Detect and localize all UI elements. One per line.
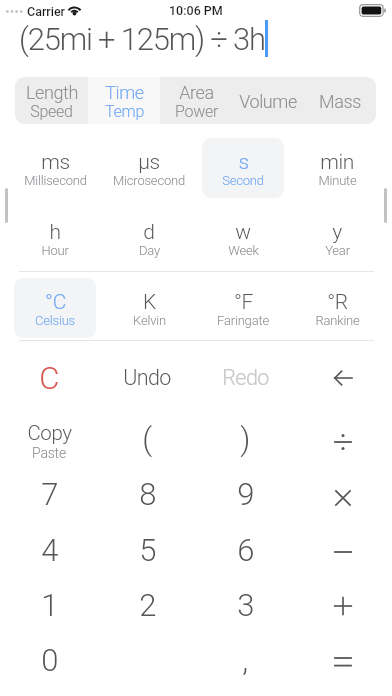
staticText: Undo [123,365,171,390]
staticText: Paste [32,445,66,461]
staticText: Mass [319,91,361,112]
button[interactable]: ( [98,411,196,467]
button[interactable]: 0 [0,632,98,687]
button[interactable]: Area [160,77,232,124]
staticText: Day [139,243,160,258]
button[interactable]: C [0,349,98,406]
staticText: 6 [237,532,254,568]
staticText: Time [105,82,144,103]
button[interactable]: h [14,208,96,268]
staticText: 4 [41,532,58,568]
staticText: Temp [105,102,144,121]
button[interactable]: Divide [294,414,392,470]
button[interactable]: w [202,208,284,268]
staticText: Copy [27,421,72,445]
staticText: Microsecond [113,173,185,188]
staticText: Length [26,82,78,103]
staticText: 5 [139,532,156,568]
staticText: y [332,220,342,245]
staticText: ) [240,421,250,457]
staticText: °F [234,290,253,315]
staticText: °C [45,290,66,315]
staticText: (25mi + 125m) ÷ 3h [19,21,265,57]
button[interactable]: min [296,138,378,198]
staticText: ms [41,150,70,175]
staticText: , [242,642,248,678]
staticText: Power [175,102,218,121]
staticText: Speed [30,102,73,121]
staticText: s [238,150,249,175]
staticText: d [143,220,155,245]
staticText: Kelvin [133,313,166,328]
button[interactable]: Copy [0,411,98,467]
button[interactable]: °C [14,278,96,338]
button[interactable]: K [108,278,190,338]
staticText: Rankine [315,313,360,328]
staticText: Faringate [217,313,269,328]
staticText: 1 [41,587,58,623]
button[interactable]: Length [15,77,88,124]
button[interactable]: s [202,138,284,198]
button[interactable]: Volume [232,77,304,124]
staticText: Celsius [35,313,75,328]
button[interactable]: 5 [98,522,196,577]
button[interactable]: Redo [196,349,294,406]
button[interactable]: 1 [0,577,98,632]
staticText: μs [138,150,160,175]
button[interactable]: 4 [0,522,98,577]
button[interactable]: Backspace [294,349,392,406]
staticText: Volume [239,91,297,112]
button[interactable]: , [196,632,294,687]
staticText: h [49,220,61,245]
staticText: K [143,290,156,315]
staticText: 9 [237,476,254,512]
staticText: ( [142,421,152,457]
staticText: Minute [318,173,357,188]
button[interactable]: ms [14,138,96,198]
staticText: Week [228,243,259,258]
staticText: Redo [222,365,269,390]
button[interactable]: Multiply [294,470,392,525]
staticText: Hour [41,243,69,258]
staticText: C [39,360,59,396]
button[interactable]: Undo [98,349,196,406]
staticText: Millisecond [24,173,87,188]
button[interactable]: 7 [0,466,98,521]
staticText: Area [179,82,214,103]
staticText: 8 [139,476,156,512]
button[interactable]: Time [88,77,160,124]
button[interactable]: 6 [196,522,294,577]
staticText: 0 [41,642,58,678]
button[interactable]: °R [296,278,378,338]
button[interactable]: Equals [294,634,392,689]
staticText: w [235,220,251,245]
staticText: °R [327,290,348,315]
button[interactable]: Mass [304,77,376,124]
staticText: 2 [139,587,156,623]
button[interactable]: d [108,208,190,268]
button[interactable]: 2 [98,577,196,632]
button[interactable]: 8 [98,466,196,521]
button[interactable]: 9 [196,466,294,521]
staticText: 10:06 PM [169,3,223,18]
button[interactable]: ) [196,411,294,467]
staticText: Year [325,243,350,258]
button[interactable]: 3 [196,577,294,632]
button[interactable]: Plus [294,578,392,633]
staticText: Carrier [27,4,66,19]
staticText: Second [222,173,264,188]
button[interactable]: Minus [294,524,392,579]
staticText: 7 [41,476,58,512]
button[interactable]: °F [202,278,284,338]
staticText: 3 [237,587,254,623]
button[interactable]: μs [108,138,190,198]
button[interactable]: y [296,208,378,268]
staticText: min [320,150,354,175]
